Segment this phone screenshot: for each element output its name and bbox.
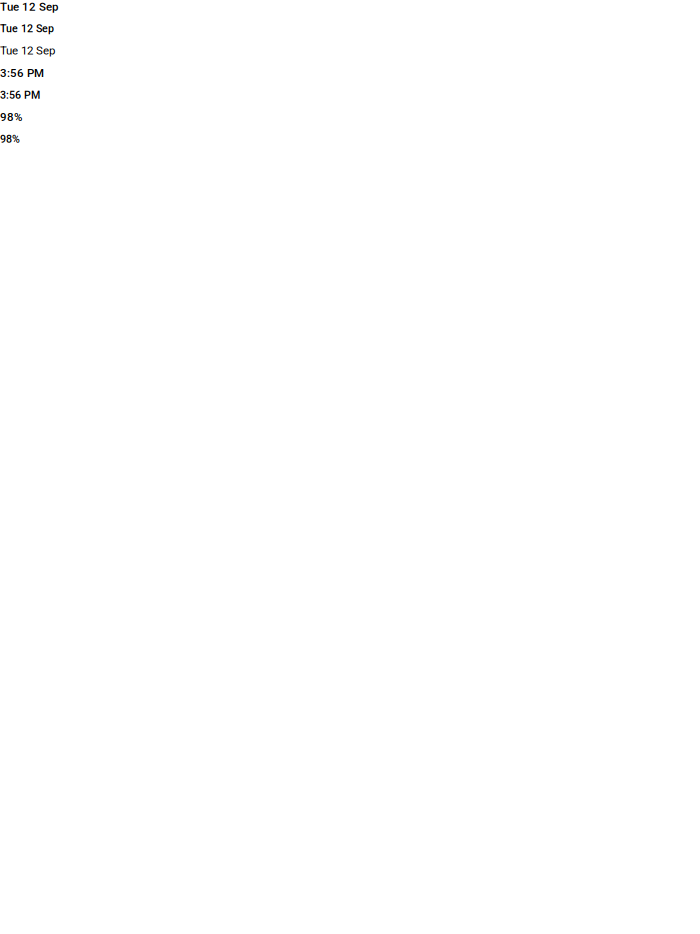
staticText: Tue 12 Sep xyxy=(0,0,58,13)
staticText: 3:56 PM xyxy=(0,66,44,80)
staticText: Tue 12 Sep xyxy=(0,22,54,35)
staticText: 3:56 PM xyxy=(0,89,40,101)
staticText: 98% xyxy=(0,110,22,124)
staticText: 98% xyxy=(0,133,20,145)
staticText: Tue 12 Sep xyxy=(0,44,55,57)
